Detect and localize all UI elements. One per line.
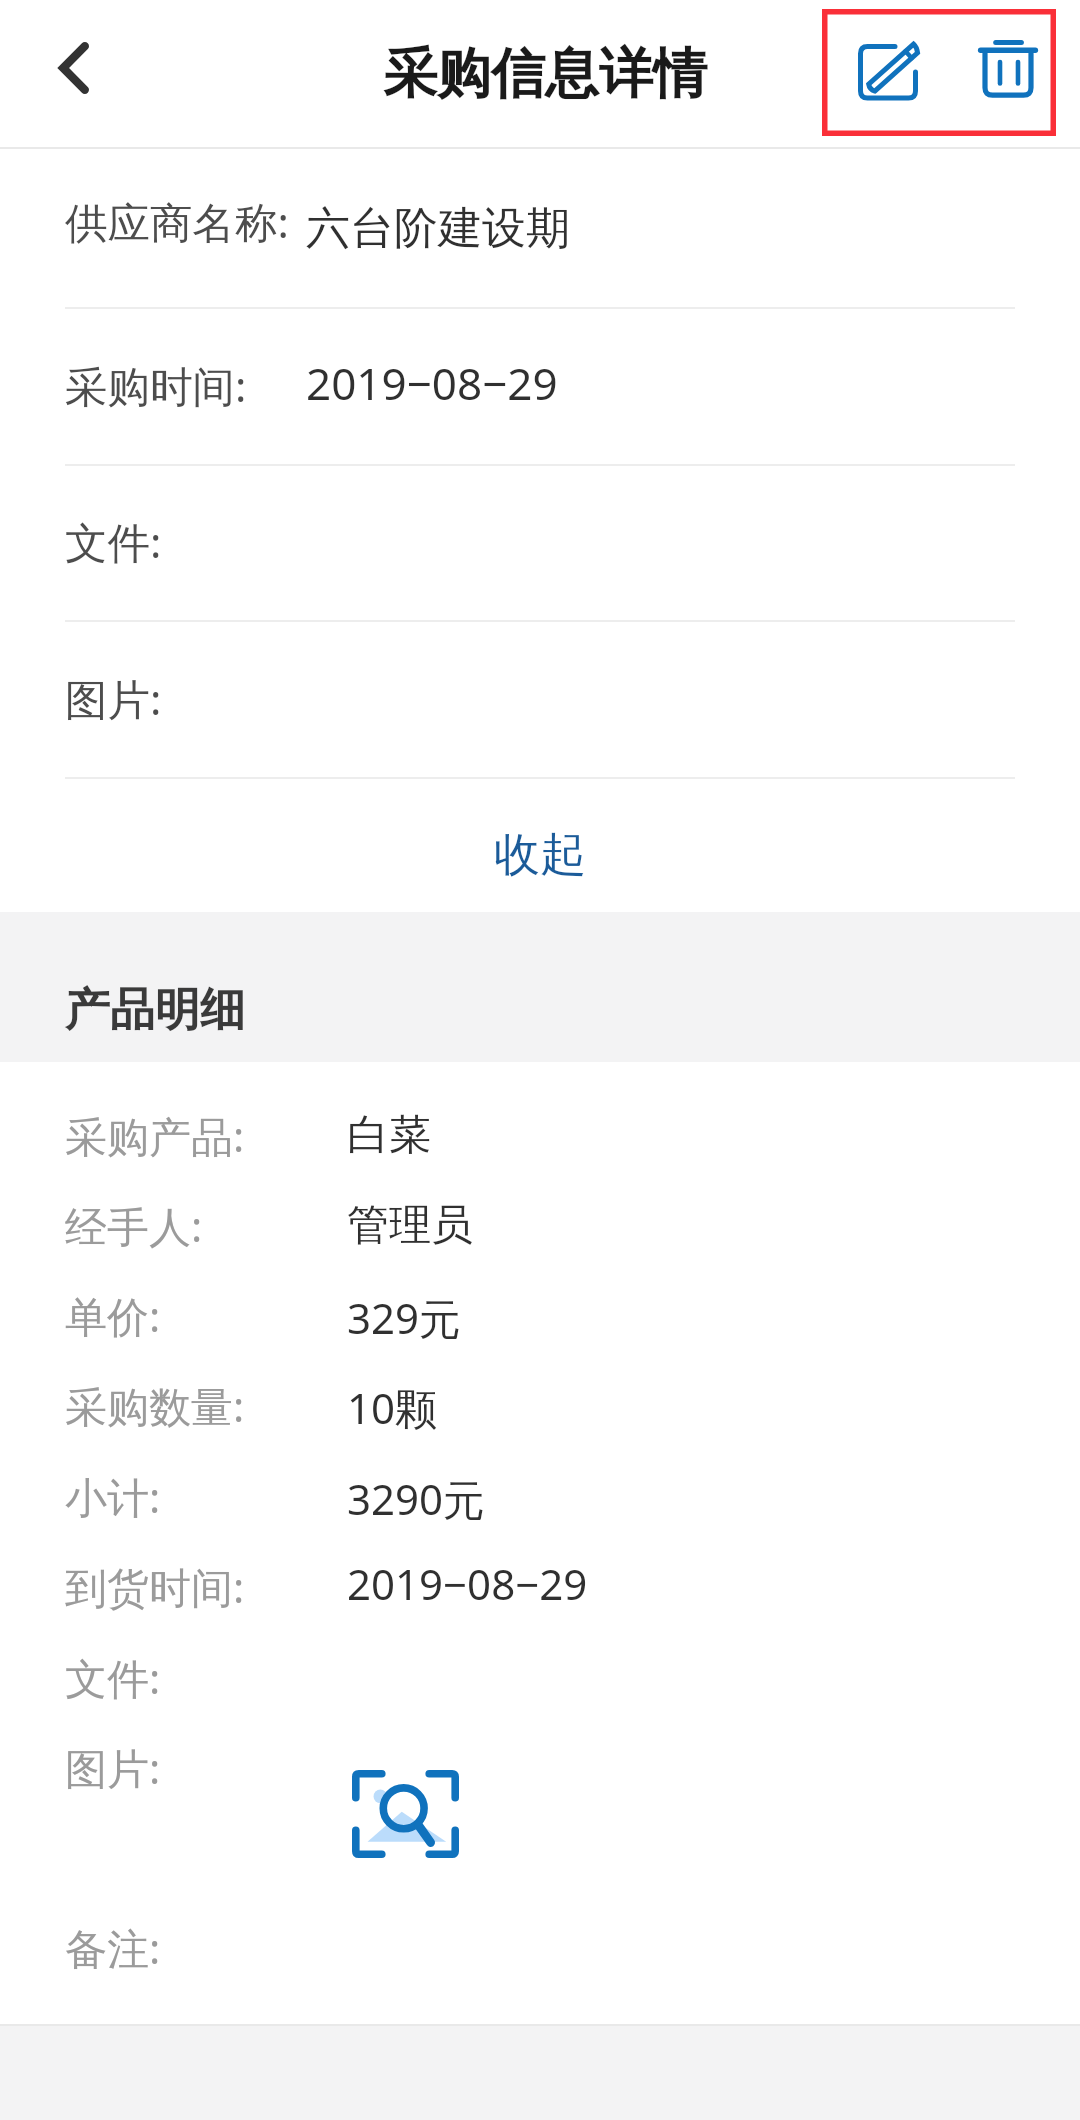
button[interactable]: 供应商名称: xyxy=(0,193,1080,253)
staticText: 备注: xyxy=(65,1919,161,1976)
staticText: 329元 xyxy=(347,1289,462,1346)
staticText: 小计: xyxy=(65,1468,161,1525)
button[interactable]: 采购产品: xyxy=(0,1107,1080,1165)
button[interactable]: 文件: xyxy=(0,1649,1080,1707)
button[interactable]: 收起 xyxy=(0,789,1080,922)
button[interactable]: 图片: xyxy=(0,670,1080,730)
staticText: 管理员 xyxy=(347,1199,473,1252)
staticText: 10颗 xyxy=(347,1379,438,1436)
staticText: 到货时间: xyxy=(65,1558,245,1615)
staticText: 文件: xyxy=(65,1649,161,1706)
button[interactable]: Edit xyxy=(840,25,938,119)
button[interactable]: 单价: xyxy=(0,1287,1080,1345)
button[interactable]: View image xyxy=(352,1770,459,1858)
staticText: 2019−08−29 xyxy=(347,1555,588,1612)
button[interactable]: 小计: xyxy=(0,1468,1080,1526)
staticText: 3290元 xyxy=(347,1470,486,1527)
staticText: 六台阶建设期 xyxy=(306,201,570,256)
staticText: 图片: xyxy=(65,1739,161,1796)
staticText: 2019−08−29 xyxy=(306,353,558,413)
staticText: 采购数量: xyxy=(65,1377,245,1434)
button[interactable]: 采购数量: xyxy=(0,1377,1080,1435)
button[interactable]: 备注: xyxy=(0,1919,1080,1977)
staticText: 单价: xyxy=(65,1287,161,1344)
staticText: 文件: xyxy=(65,513,162,571)
button[interactable]: 到货时间: xyxy=(0,1558,1080,1616)
staticText: 供应商名称: xyxy=(65,193,289,251)
button[interactable]: Back xyxy=(15,8,133,128)
button[interactable]: 图片: xyxy=(0,1739,1080,1797)
staticText: 产品明细 xyxy=(65,982,245,1039)
staticText: 白菜 xyxy=(347,1109,431,1162)
staticText: 采购时间: xyxy=(65,357,247,415)
staticText: 经手人: xyxy=(65,1197,203,1254)
staticText: 图片: xyxy=(65,670,162,728)
staticText: 收起 xyxy=(494,826,586,884)
button[interactable]: 文件: xyxy=(0,513,1080,573)
staticText: 采购信息详情 xyxy=(383,40,707,108)
button[interactable]: 经手人: xyxy=(0,1197,1080,1255)
staticText: 采购产品: xyxy=(65,1107,245,1164)
button[interactable]: Delete xyxy=(960,22,1056,116)
button[interactable]: 采购时间: xyxy=(0,357,1080,417)
